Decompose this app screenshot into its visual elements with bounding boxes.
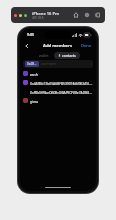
button[interactable]: Settings: [83, 11, 91, 19]
staticText: wallet: [39, 53, 49, 58]
button[interactable]: ·: [20, 87, 96, 96]
button[interactable]: 0x44B5b13b05A6BFB53901fb5f06345L…: [20, 78, 96, 87]
button[interactable]: Done: [80, 42, 93, 49]
staticText: girou: [30, 99, 39, 103]
staticText: Done: [81, 43, 92, 48]
staticText: iPhone 16 Pro: [32, 11, 60, 16]
button[interactable]: Home: [72, 11, 80, 19]
staticText: 0x44B5b13b05A6BFB53901fb5f06345L…: [30, 81, 93, 85]
button[interactable]: Close: [14, 14, 17, 17]
button[interactable]: girou: [20, 96, 96, 105]
button[interactable]: 0x4B…: [23, 60, 93, 68]
staticText: wssh: [30, 72, 38, 76]
staticText: Add members: [43, 43, 73, 49]
button[interactable]: wssh: [20, 69, 96, 78]
button[interactable]: wallet: [36, 52, 52, 59]
staticText: contacts: [62, 53, 76, 58]
button[interactable]: Rotate: [94, 11, 102, 19]
button[interactable]: Back: [22, 41, 31, 50]
staticText: 0x4B…: [27, 62, 37, 66]
button[interactable]: Maximise: [24, 14, 27, 17]
button[interactable]: Minimise: [19, 14, 22, 17]
button[interactable]: contacts: [54, 52, 80, 59]
staticText: 0xF8b5ff5beD608cOBAF9CF88e7ADB8…: [30, 90, 92, 94]
staticText: username: [41, 62, 57, 66]
staticText: ·: [25, 89, 27, 94]
staticText: iOS 18.5: [32, 16, 44, 20]
staticText: 9:05: [27, 32, 35, 37]
